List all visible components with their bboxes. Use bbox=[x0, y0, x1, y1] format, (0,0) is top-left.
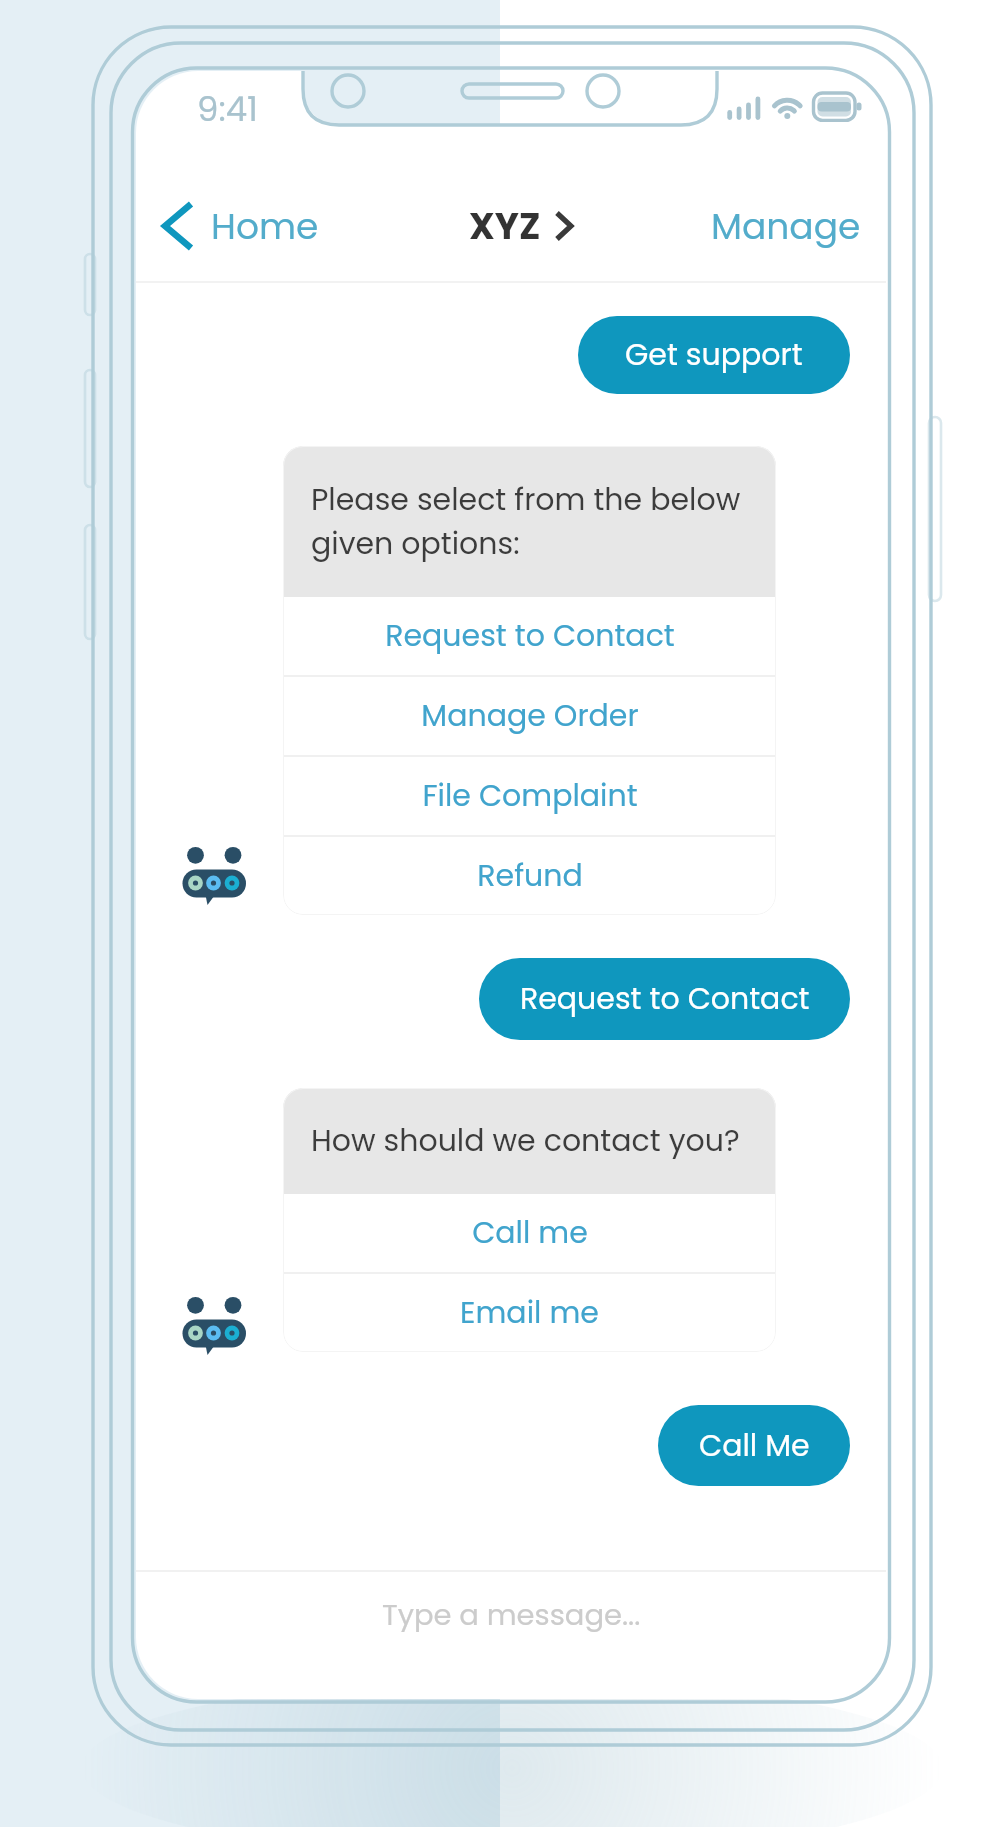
staticText: Please select from the below given optio… bbox=[311, 479, 741, 564]
staticText: Request to Contact bbox=[520, 978, 810, 1020]
button[interactable]: Email me bbox=[283, 1274, 776, 1352]
button[interactable]: Back bbox=[159, 197, 323, 255]
staticText: XYZ bbox=[469, 201, 541, 251]
staticText: Get support bbox=[625, 334, 803, 376]
button[interactable]: Call Me bbox=[658, 1405, 850, 1486]
staticText: 9:41 bbox=[197, 85, 258, 133]
staticText: Home bbox=[211, 201, 319, 251]
button[interactable]: Manage bbox=[707, 197, 865, 255]
staticText: Call me bbox=[472, 1212, 588, 1254]
button[interactable]: XYZ bbox=[465, 197, 577, 255]
other: Assistant bbox=[182, 1295, 247, 1355]
button[interactable]: Request to Contact bbox=[479, 958, 850, 1040]
staticText: Manage Order bbox=[421, 695, 639, 737]
staticText: Refund bbox=[477, 855, 583, 897]
button[interactable]: Type a message... bbox=[136, 1568, 886, 1663]
staticText: Call Me bbox=[699, 1425, 810, 1467]
staticText: Type a message... bbox=[382, 1595, 641, 1636]
other: Back bbox=[163, 202, 193, 250]
staticText: Manage bbox=[711, 201, 861, 251]
button[interactable]: Refund bbox=[283, 837, 776, 915]
staticText: How should we contact you? bbox=[311, 1120, 740, 1162]
button[interactable]: File Complaint bbox=[283, 757, 776, 835]
button[interactable]: Get support bbox=[578, 316, 850, 394]
button[interactable]: Request to Contact bbox=[283, 597, 776, 675]
other: Assistant bbox=[182, 845, 247, 905]
staticText: Email me bbox=[460, 1292, 599, 1334]
button[interactable]: Manage Order bbox=[283, 677, 776, 755]
staticText: Request to Contact bbox=[385, 615, 675, 657]
staticText: File Complaint bbox=[422, 775, 638, 817]
button[interactable]: Call me bbox=[283, 1194, 776, 1272]
